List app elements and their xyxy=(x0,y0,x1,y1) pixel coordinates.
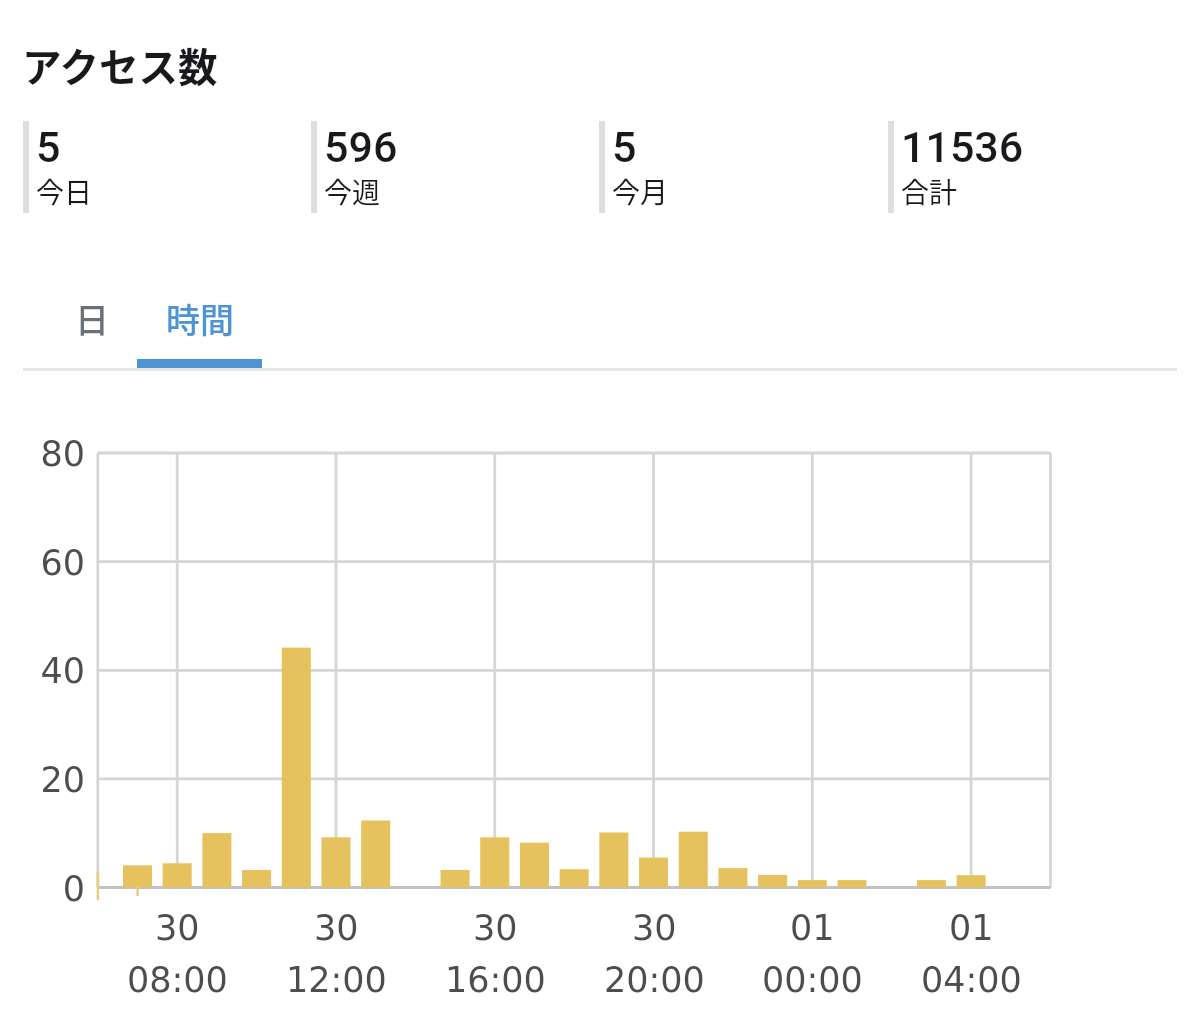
staticText: 20:00 xyxy=(604,960,705,1001)
staticText: 30 xyxy=(314,908,359,949)
staticText: 30 xyxy=(155,908,200,949)
staticText: 16:00 xyxy=(445,960,546,1001)
staticText: 596 xyxy=(324,122,398,172)
staticText: 30 xyxy=(473,908,518,949)
staticText: 80 xyxy=(0,434,85,475)
staticText: 合計 xyxy=(901,171,958,212)
staticText: 5 xyxy=(612,122,637,172)
staticText: 時間 xyxy=(166,294,234,343)
staticText: 01 xyxy=(949,908,994,949)
staticText: 08:00 xyxy=(127,960,228,1001)
staticText: 日 xyxy=(75,294,109,343)
staticText: 01 xyxy=(790,908,835,949)
staticText: 今日 xyxy=(36,171,93,212)
button[interactable]: 5 xyxy=(599,121,888,213)
staticText: 30 xyxy=(632,908,677,949)
staticText: アクセス数 xyxy=(22,36,218,93)
button[interactable]: 11536 xyxy=(888,121,1177,213)
staticText: 今週 xyxy=(324,171,381,212)
staticText: 0 xyxy=(0,869,85,910)
staticText: 40 xyxy=(0,651,85,692)
button[interactable]: 5 xyxy=(23,121,311,213)
button[interactable]: 596 xyxy=(311,121,599,213)
staticText: 04:00 xyxy=(921,960,1022,1001)
staticText: 20 xyxy=(0,760,85,801)
staticText: 11536 xyxy=(901,122,1024,172)
staticText: 60 xyxy=(0,543,85,584)
staticText: 00:00 xyxy=(762,960,863,1001)
button[interactable]: 日 xyxy=(23,296,161,368)
button[interactable]: 時間 xyxy=(137,296,262,368)
staticText: 今月 xyxy=(612,171,669,212)
staticText: 5 xyxy=(36,122,61,172)
staticText: 12:00 xyxy=(286,960,387,1001)
